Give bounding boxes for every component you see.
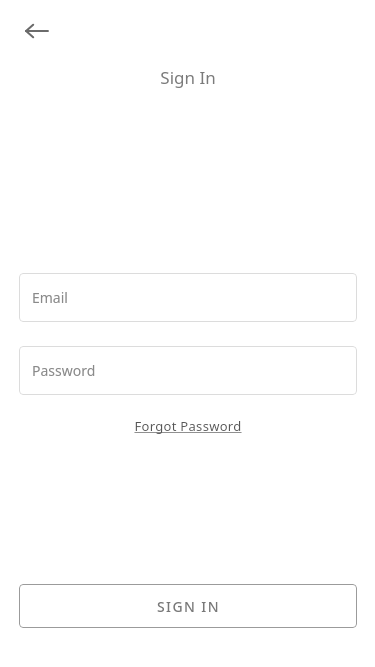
staticText: Forgot Password — [134, 417, 242, 435]
staticText: Sign In — [160, 66, 216, 89]
button[interactable]: Password — [19, 346, 357, 395]
button[interactable]: Email — [19, 273, 357, 322]
button[interactable]: Forgot Password — [128, 414, 248, 438]
staticText: SIGN IN — [157, 597, 220, 616]
button[interactable]: SIGN IN — [19, 584, 357, 628]
staticText: Email — [32, 288, 68, 307]
staticText: Password — [32, 361, 96, 380]
button[interactable]: Back — [17, 11, 57, 51]
